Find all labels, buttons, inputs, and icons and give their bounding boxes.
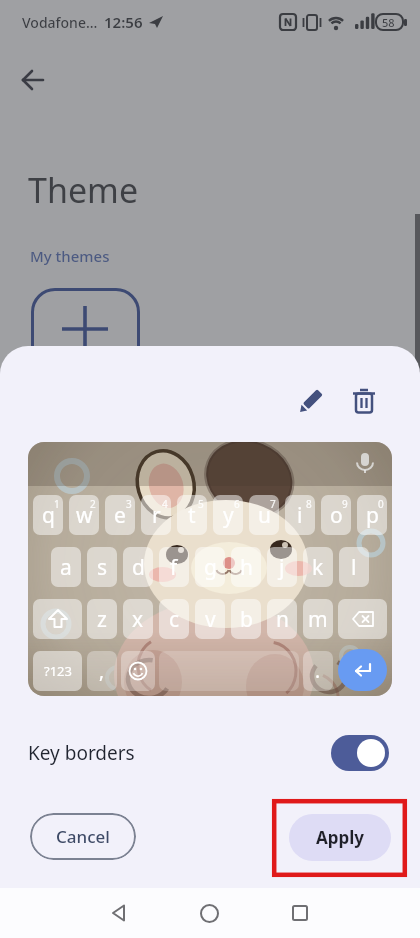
button[interactable]: d — [123, 547, 153, 587]
staticText: Key borders — [28, 740, 135, 766]
staticText: 8 — [306, 497, 312, 511]
button[interactable] — [280, 893, 320, 933]
staticText: My themes — [30, 246, 110, 266]
button[interactable]: g — [195, 547, 225, 587]
staticText: i — [297, 501, 303, 530]
button[interactable]: a — [51, 547, 81, 587]
staticText: e — [114, 501, 126, 530]
staticText: j — [279, 553, 285, 582]
button[interactable]: c — [159, 599, 189, 639]
staticText: 1 — [54, 497, 60, 511]
staticText: v — [205, 605, 216, 634]
staticText: p — [366, 501, 379, 530]
staticText: 3 — [126, 497, 132, 511]
staticText: c — [169, 605, 180, 634]
button[interactable]: k — [303, 547, 333, 587]
staticText: , — [99, 658, 105, 684]
button[interactable] — [338, 649, 387, 691]
button[interactable]: q — [33, 495, 63, 535]
staticText: q — [42, 501, 55, 530]
button[interactable] — [33, 599, 82, 639]
button[interactable]: m — [303, 599, 333, 639]
staticText: Apply — [316, 826, 365, 849]
staticText: k — [312, 553, 324, 582]
button[interactable] — [121, 651, 155, 691]
staticText: Theme — [28, 167, 139, 213]
staticText: 7 — [270, 497, 276, 511]
staticText: y — [223, 501, 234, 530]
staticText: Cancel — [56, 825, 110, 848]
button[interactable]: x — [123, 599, 153, 639]
staticText: 4 — [162, 497, 168, 511]
staticText: . — [315, 658, 321, 684]
staticText: l — [351, 553, 357, 582]
staticText: 5 — [198, 497, 204, 511]
staticText: g — [204, 553, 217, 582]
staticText: n — [276, 605, 289, 634]
staticText: 6 — [234, 497, 240, 511]
button[interactable]: v — [195, 599, 225, 639]
button[interactable] — [331, 735, 389, 771]
staticText: 12:56 — [104, 12, 143, 32]
staticText: h — [240, 553, 253, 582]
staticText: a — [60, 553, 72, 582]
button[interactable]: l — [339, 547, 369, 587]
staticText: u — [258, 501, 271, 530]
staticText: w — [76, 501, 93, 530]
button[interactable]: ?123 — [33, 651, 82, 691]
staticText: 9 — [342, 497, 348, 511]
staticText: z — [97, 605, 107, 634]
button[interactable]: w — [69, 495, 99, 535]
button[interactable] — [13, 60, 53, 100]
staticText: o — [330, 501, 343, 530]
button[interactable]: z — [87, 599, 117, 639]
button[interactable]: Cancel — [30, 813, 136, 860]
button[interactable] — [342, 379, 386, 423]
button[interactable]: p — [357, 495, 387, 535]
button[interactable]: f — [159, 547, 189, 587]
staticText: 58 — [382, 15, 395, 30]
staticText: 2 — [90, 497, 96, 511]
button[interactable] — [99, 893, 139, 933]
staticText: d — [132, 553, 145, 582]
button[interactable]: j — [267, 547, 297, 587]
button[interactable]: h — [231, 547, 261, 587]
staticText: m — [308, 605, 328, 634]
button[interactable] — [159, 651, 299, 691]
staticText: r — [152, 501, 161, 530]
button[interactable]: o — [321, 495, 351, 535]
button[interactable]: s — [87, 547, 117, 587]
button[interactable]: b — [231, 599, 261, 639]
staticText: f — [170, 553, 178, 582]
button[interactable]: , — [87, 651, 117, 691]
button[interactable]: Apply — [289, 814, 391, 861]
staticText: 0 — [378, 497, 384, 511]
button[interactable]: . — [303, 651, 333, 691]
button[interactable]: r — [141, 495, 171, 535]
staticText: s — [97, 553, 108, 582]
staticText: t — [188, 501, 196, 530]
button[interactable] — [189, 893, 229, 933]
button[interactable]: i — [285, 495, 315, 535]
button[interactable]: e — [105, 495, 135, 535]
staticText: Vodafone… — [22, 13, 98, 32]
button[interactable] — [288, 380, 332, 424]
button[interactable]: y — [213, 495, 243, 535]
button[interactable]: u — [249, 495, 279, 535]
staticText: ?123 — [44, 662, 72, 680]
staticText: x — [132, 605, 144, 634]
button[interactable]: t — [177, 495, 207, 535]
button[interactable] — [338, 599, 387, 639]
button[interactable]: n — [267, 599, 297, 639]
staticText: b — [240, 605, 253, 634]
